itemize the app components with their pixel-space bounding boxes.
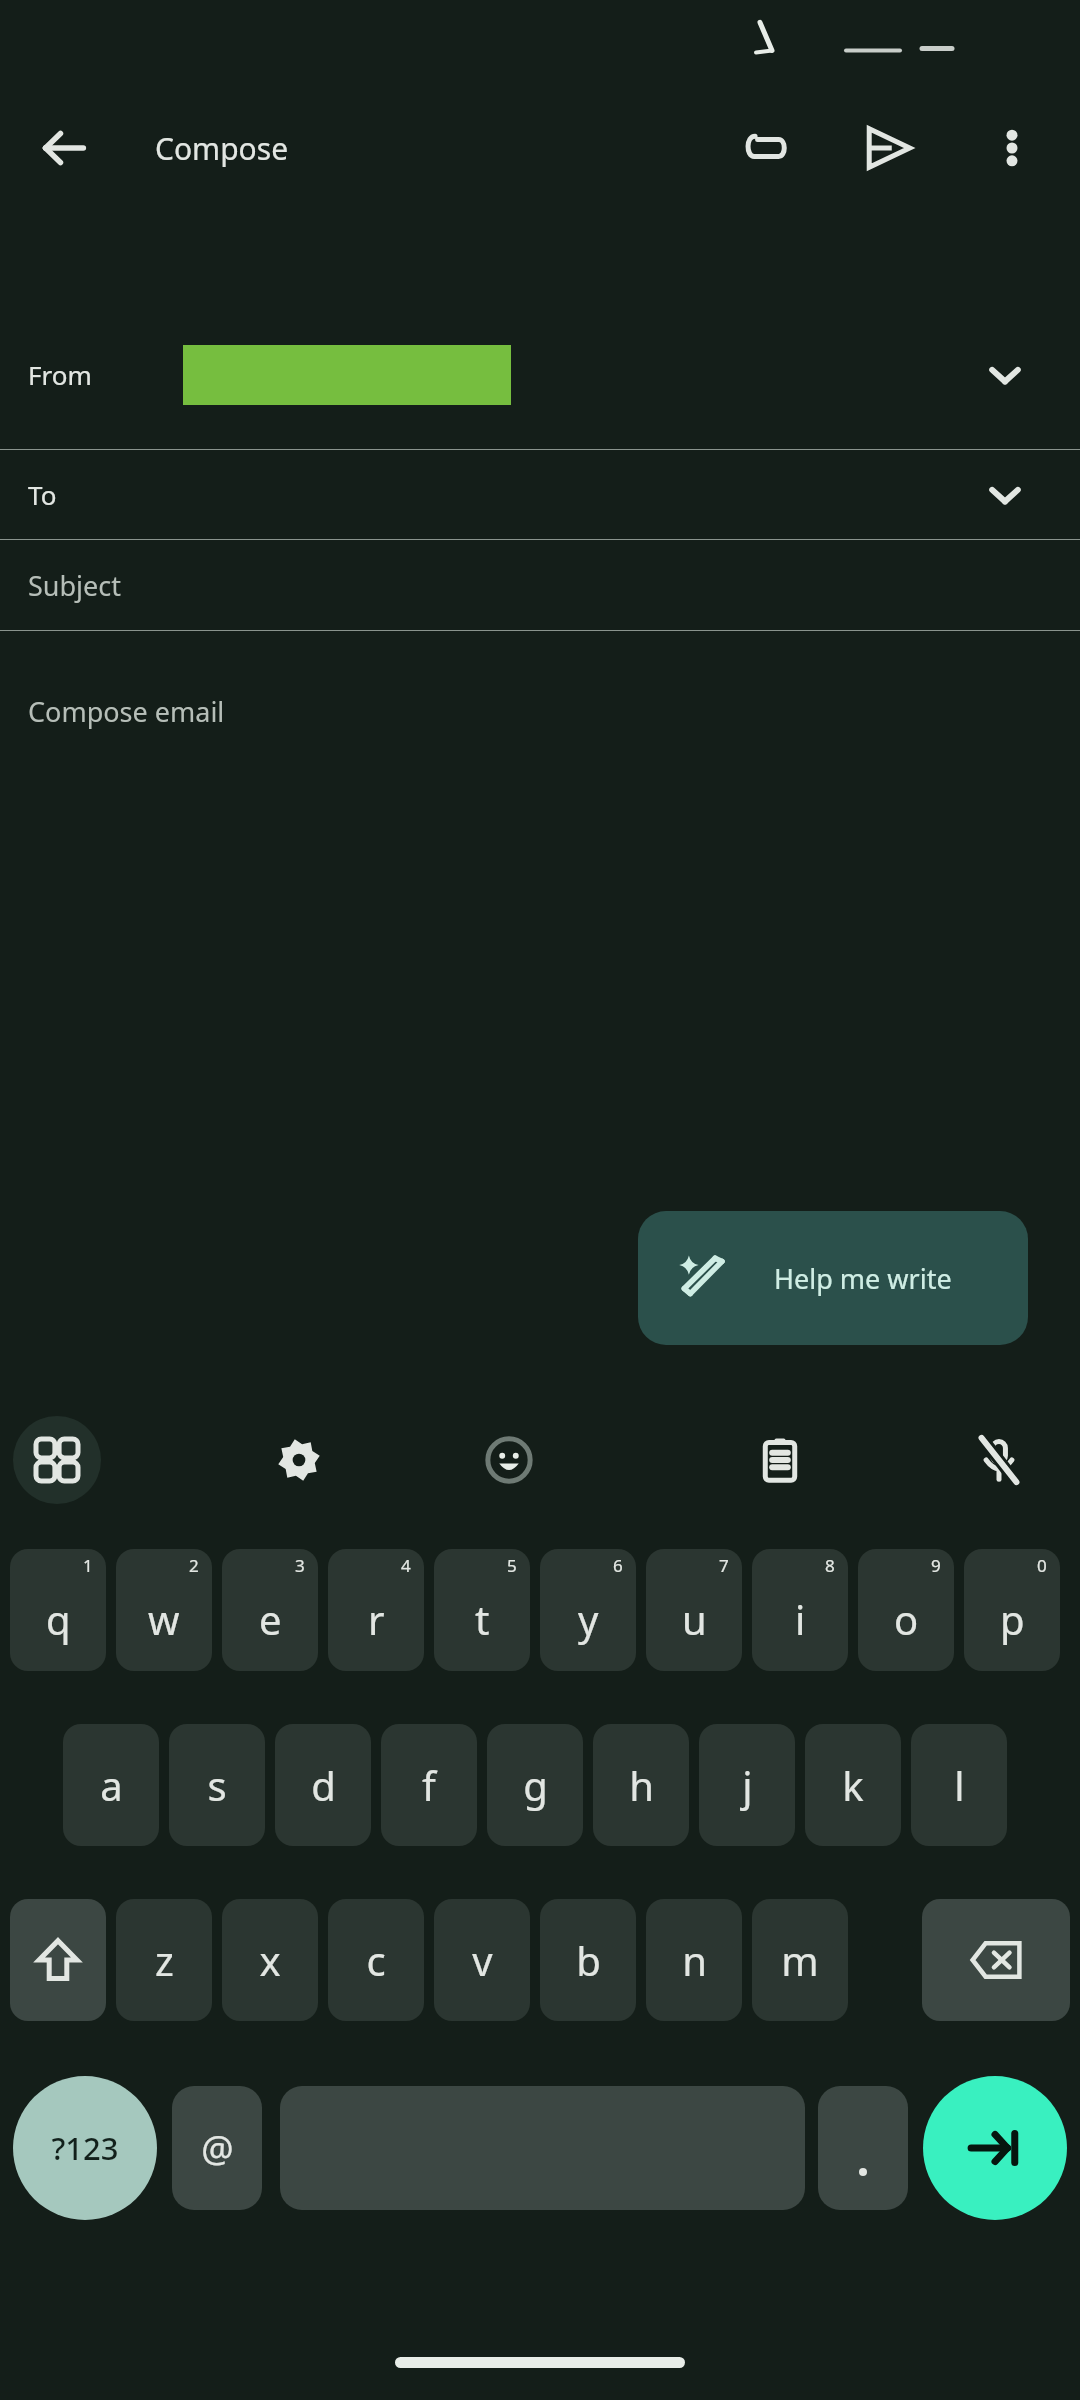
button[interactable]: Enter xyxy=(923,2076,1067,2220)
staticText: To xyxy=(28,477,57,512)
button[interactable]: Compose email xyxy=(0,631,1080,1191)
staticText: 4 xyxy=(401,1554,411,1577)
staticText: 9 xyxy=(931,1554,941,1577)
staticText: j xyxy=(742,1758,753,1812)
button[interactable]: Send xyxy=(843,102,935,194)
button[interactable]: l xyxy=(911,1724,1007,1846)
button[interactable]: v xyxy=(434,1899,530,2021)
button[interactable]: a xyxy=(63,1724,159,1846)
staticText: c xyxy=(366,1933,386,1987)
button[interactable]: Expand xyxy=(975,465,1035,525)
staticText: @ xyxy=(201,2124,234,2173)
staticText: From xyxy=(28,357,92,392)
staticText: i xyxy=(795,1592,806,1646)
staticText: 0 xyxy=(1037,1554,1047,1577)
button[interactable]: 6 xyxy=(540,1549,636,1671)
button[interactable]: Emoji xyxy=(465,1416,553,1504)
button[interactable]: g xyxy=(487,1724,583,1846)
staticText: d xyxy=(311,1758,336,1812)
staticText: u xyxy=(682,1592,707,1646)
staticText: q xyxy=(46,1592,71,1646)
staticText: Help me write xyxy=(774,1260,952,1297)
staticText: n xyxy=(682,1933,707,1987)
staticText: m xyxy=(781,1933,819,1987)
staticText: r xyxy=(368,1592,385,1646)
staticText: k xyxy=(842,1758,864,1812)
button[interactable]: j xyxy=(699,1724,795,1846)
staticText: g xyxy=(523,1758,548,1812)
staticText: w xyxy=(148,1592,180,1646)
button[interactable]: To xyxy=(0,450,1080,539)
staticText: 3 xyxy=(295,1554,305,1577)
button[interactable]: b xyxy=(540,1899,636,2021)
button[interactable]: Backspace xyxy=(922,1899,1070,2021)
staticText: o xyxy=(894,1592,919,1646)
button[interactable]: 7 xyxy=(646,1549,742,1671)
staticText: t xyxy=(475,1592,490,1646)
staticText: z xyxy=(155,1933,174,1987)
staticText: 6 xyxy=(613,1554,623,1577)
button[interactable]: k xyxy=(805,1724,901,1846)
staticText: b xyxy=(576,1933,601,1987)
staticText: 7 xyxy=(719,1554,729,1577)
staticText: s xyxy=(207,1758,227,1812)
button[interactable]: h xyxy=(593,1724,689,1846)
button[interactable]: 8 xyxy=(752,1549,848,1671)
button[interactable]: n xyxy=(646,1899,742,2021)
button[interactable]: 4 xyxy=(328,1549,424,1671)
button[interactable]: z xyxy=(116,1899,212,2021)
staticText: y xyxy=(578,1592,599,1646)
button[interactable]: ?123 xyxy=(13,2076,157,2220)
staticText: Subject xyxy=(28,567,122,604)
button[interactable]: m xyxy=(752,1899,848,2021)
staticText: h xyxy=(629,1758,654,1812)
button[interactable]: x xyxy=(222,1899,318,2021)
button[interactable]: f xyxy=(381,1724,477,1846)
staticText: e xyxy=(259,1592,282,1646)
button[interactable]: Voice input off xyxy=(955,1416,1043,1504)
staticText: 5 xyxy=(507,1554,517,1577)
staticText: ?123 xyxy=(51,2127,119,2169)
button[interactable]: 3 xyxy=(222,1549,318,1671)
staticText: a xyxy=(100,1758,123,1812)
button[interactable]: 1 xyxy=(10,1549,106,1671)
button[interactable]: Shift xyxy=(10,1899,106,2021)
button[interactable]: c xyxy=(328,1899,424,2021)
button[interactable]: Help me write xyxy=(638,1211,1028,1345)
button[interactable]: Settings xyxy=(255,1416,343,1504)
button[interactable]: 0 xyxy=(964,1549,1060,1671)
button[interactable]: Back xyxy=(20,104,108,192)
staticText: p xyxy=(1000,1592,1025,1646)
button[interactable]: Keyboard modes xyxy=(13,1416,101,1504)
staticText: l xyxy=(954,1758,965,1812)
staticText: Compose email xyxy=(28,693,225,730)
button[interactable]: 9 xyxy=(858,1549,954,1671)
staticText: f xyxy=(422,1758,436,1812)
button[interactable]: Subject xyxy=(0,540,1080,630)
button[interactable]: s xyxy=(169,1724,265,1846)
staticText: 2 xyxy=(189,1554,199,1577)
staticText: x xyxy=(259,1933,281,1987)
button[interactable]: Space xyxy=(280,2086,805,2210)
staticText: v xyxy=(472,1933,493,1987)
button[interactable]: 2 xyxy=(116,1549,212,1671)
staticText: Compose xyxy=(155,128,289,169)
button[interactable]: Attach file xyxy=(720,102,812,194)
staticText: 1 xyxy=(83,1554,93,1577)
button[interactable]: Expand xyxy=(975,345,1035,405)
button[interactable]: Clipboard xyxy=(736,1416,824,1504)
button[interactable] xyxy=(818,2086,908,2210)
button[interactable]: More options xyxy=(966,102,1058,194)
button[interactable]: d xyxy=(275,1724,371,1846)
button[interactable]: @ xyxy=(172,2086,262,2210)
button[interactable]: From xyxy=(0,300,1080,449)
staticText: 8 xyxy=(825,1554,835,1577)
button[interactable]: 5 xyxy=(434,1549,530,1671)
